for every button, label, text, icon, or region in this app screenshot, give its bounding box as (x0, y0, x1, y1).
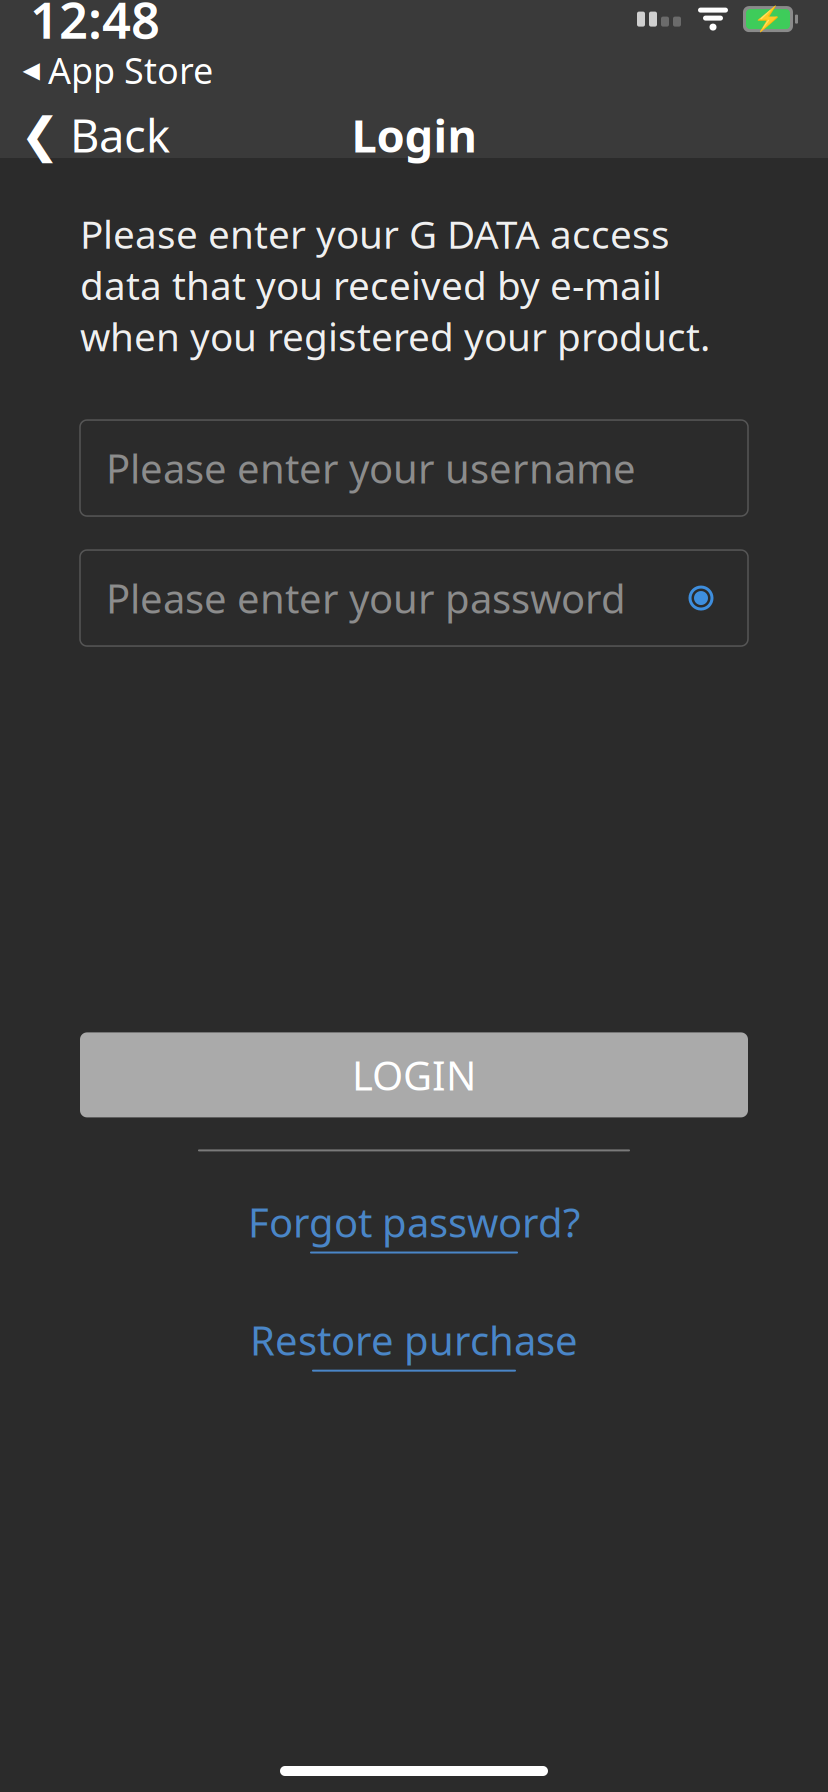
staticText: Back (70, 105, 170, 165)
button[interactable]: Forgot password? (218, 1187, 610, 1261)
staticText: LOGIN (352, 1048, 476, 1101)
button[interactable]: ❮ (0, 95, 190, 175)
staticText: Please enter your G DATA access data tha… (80, 208, 710, 362)
staticText: ❮ (20, 108, 60, 162)
staticText: Please enter your password (106, 571, 626, 625)
staticText: Forgot password? (248, 1195, 580, 1248)
staticText: App Store (48, 46, 213, 94)
staticText: Restore purchase (250, 1313, 578, 1367)
button[interactable]: Please enter your password (80, 550, 748, 646)
staticText: 12:48 (30, 0, 160, 53)
staticText: ◀ (22, 57, 39, 83)
staticText: ⚡ (753, 5, 783, 33)
staticText: Login (351, 105, 476, 165)
staticText: Please enter your username (106, 441, 636, 495)
button[interactable]: LOGIN (80, 1032, 748, 1117)
button[interactable]: Please enter your username (80, 420, 748, 516)
button[interactable]: Restore purchase (220, 1305, 608, 1380)
